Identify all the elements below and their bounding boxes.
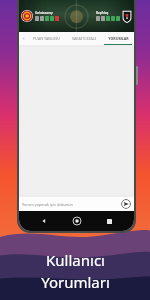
staticText: Yorumları [41,272,110,292]
button[interactable]: Back [36,213,52,229]
button[interactable]: SAKAT/CEZALI [65,32,102,45]
button[interactable]: PUAN TABLOSU [28,32,65,45]
staticText: SAKAT/CEZALI [72,36,96,41]
button[interactable]: Recent apps [101,213,117,229]
staticText: PUAN TABLOSU [33,36,60,41]
staticText: YORUMLAR [108,36,129,41]
staticText: Kullanıcı [46,250,105,270]
button[interactable]: Yorum yapmak için dokunun [22,197,121,211]
staticText: ‹ [23,35,25,42]
staticText: Galatasaray [35,11,53,15]
button[interactable]: Send comment [121,199,131,209]
button[interactable]: Home [69,213,85,229]
staticText: Beşiktaş [96,11,109,15]
button[interactable]: YORUMLAR [102,32,134,45]
staticText: Yorum yapmak için dokunun [22,202,73,207]
button[interactable]: Previous tabs [19,32,28,45]
